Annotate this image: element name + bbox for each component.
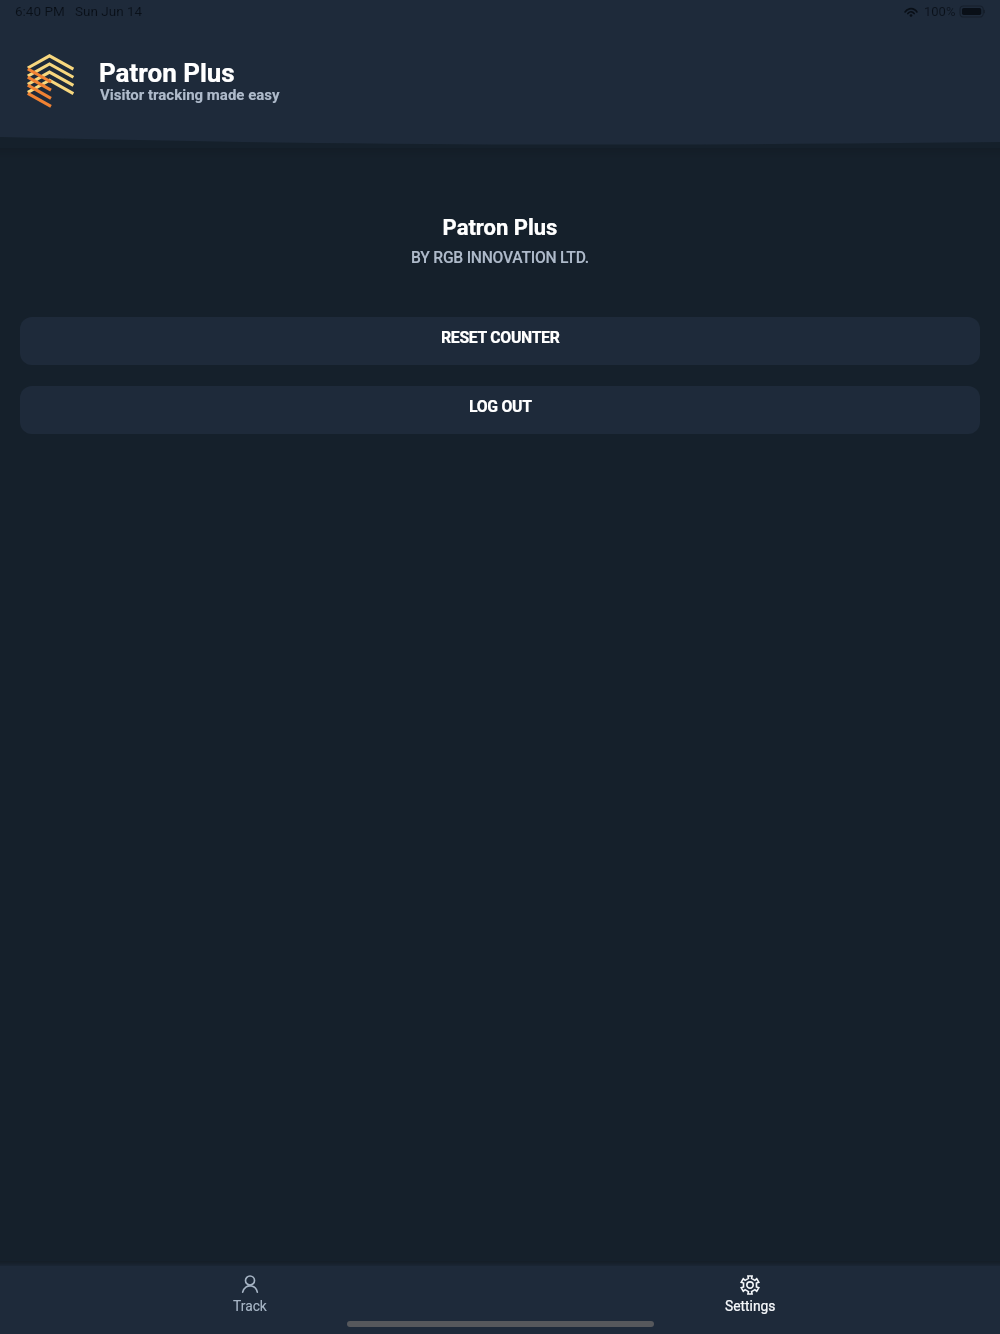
staticText: Patron Plus xyxy=(99,58,235,88)
staticText: LOG OUT xyxy=(469,397,532,416)
button[interactable]: Settings xyxy=(500,1266,1000,1321)
staticText: Track xyxy=(233,1298,267,1314)
staticText: RESET COUNTER xyxy=(441,328,560,347)
staticText: Patron Plus xyxy=(0,215,1000,241)
other: Settings xyxy=(740,1274,760,1296)
staticText: Visitor tracking made easy xyxy=(100,86,280,104)
other: Patron Plus logo xyxy=(26,54,74,108)
staticText: BY RGB INNOVATION LTD. xyxy=(0,248,1000,266)
button[interactable]: LOG OUT xyxy=(20,386,980,434)
other: Track xyxy=(239,1274,261,1296)
button[interactable]: RESET COUNTER xyxy=(20,317,980,365)
staticText: Sun Jun 14 xyxy=(75,3,143,19)
staticText: 6:40 PM xyxy=(15,3,65,19)
staticText: 100% xyxy=(924,4,956,19)
button[interactable]: Track xyxy=(0,1266,500,1321)
staticText: Settings xyxy=(725,1298,776,1314)
